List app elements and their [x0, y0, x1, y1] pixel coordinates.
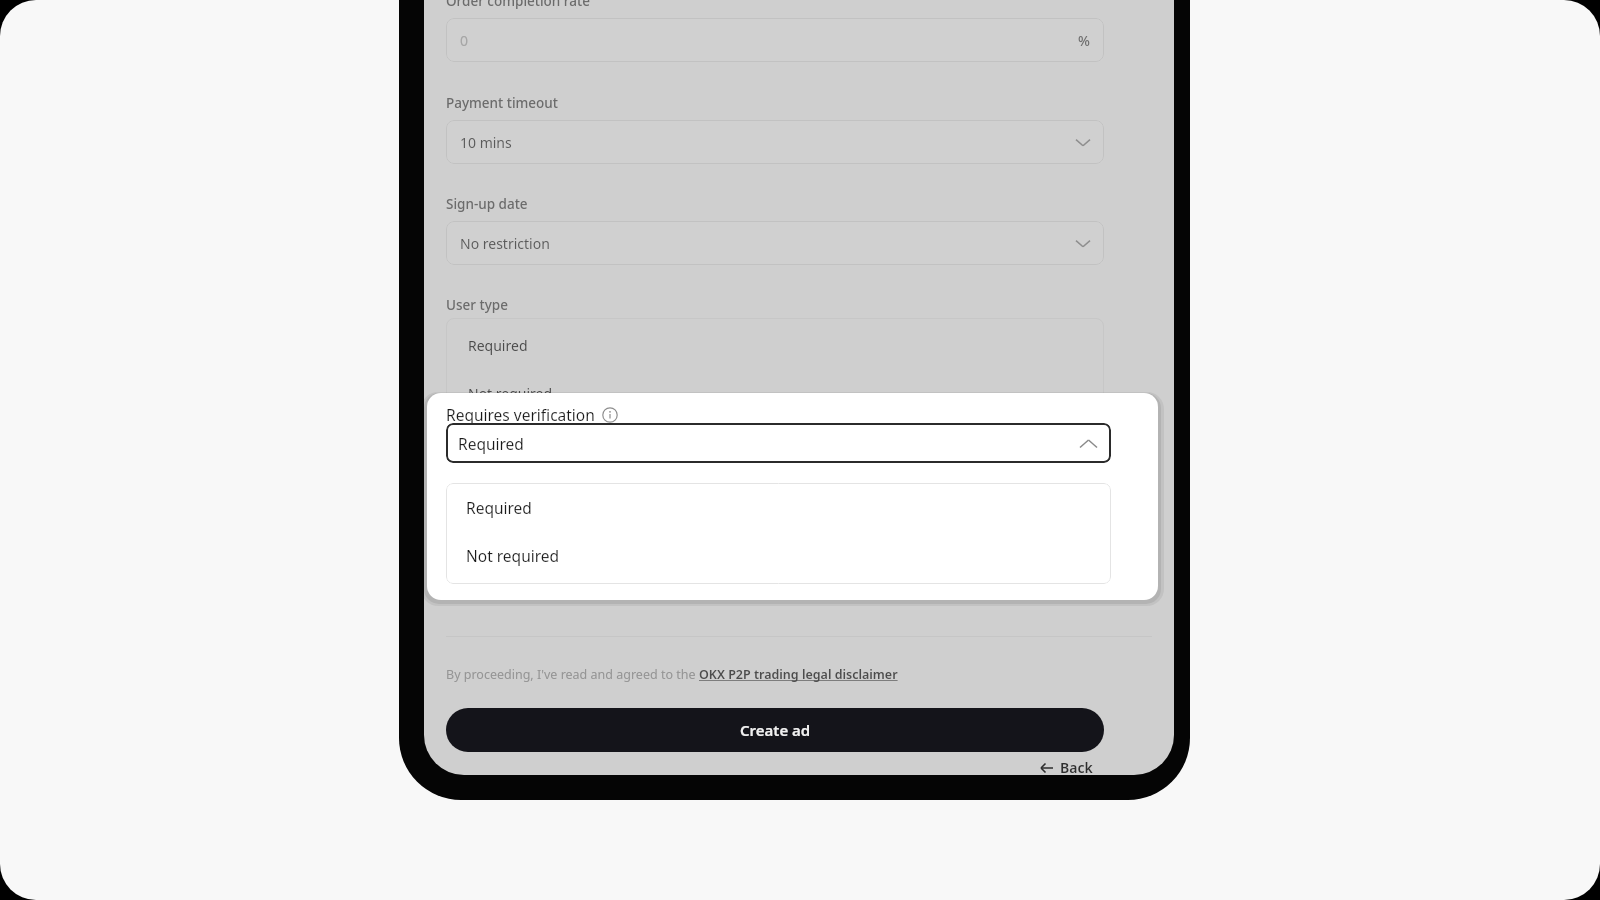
staticText: Sign-up date — [446, 195, 528, 213]
staticText: % — [1078, 31, 1090, 50]
staticText: By proceeding, I've read and agreed to t… — [446, 666, 699, 683]
staticText: Payment timeout — [446, 94, 558, 112]
staticText: No restriction — [460, 234, 550, 253]
button[interactable]: Required — [446, 423, 1111, 463]
button[interactable]: OKX P2P trading legal disclaimer — [699, 666, 898, 683]
staticText: 10 mins — [460, 133, 512, 152]
staticText: Required — [466, 497, 532, 518]
button[interactable]: No restriction — [446, 221, 1104, 265]
staticText: Required — [458, 433, 524, 454]
staticText: User type — [446, 296, 508, 314]
button[interactable]: Required — [446, 483, 1111, 531]
button[interactable]: More information about verification — [602, 407, 618, 423]
button[interactable]: 10 mins — [446, 120, 1104, 164]
staticText: Select from a total of 250 countries — [446, 568, 659, 586]
button[interactable]: Back — [1039, 758, 1093, 775]
staticText: Not required — [466, 545, 560, 566]
staticText: Required — [468, 336, 528, 355]
staticText: 0 — [460, 31, 469, 50]
button[interactable]: Create ad — [446, 708, 1104, 752]
staticText: Create ad — [740, 720, 811, 740]
button[interactable]: Not required — [446, 531, 1111, 579]
staticText: Back — [1060, 758, 1093, 775]
button[interactable]: 0 — [446, 18, 1104, 62]
staticText: Not required — [468, 384, 553, 403]
staticText: Order completion rate — [446, 0, 590, 10]
staticText: Requires verification — [446, 404, 595, 425]
